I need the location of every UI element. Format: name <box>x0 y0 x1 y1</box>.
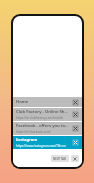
button[interactable]: Instagram <box>13 136 82 149</box>
button[interactable]: Home <box>13 97 82 107</box>
button[interactable]: Close tab <box>72 99 79 106</box>
button[interactable]: Close all tabs <box>71 155 79 162</box>
staticText: NEW TAB <box>53 157 67 161</box>
button[interactable]: Close tab <box>72 111 79 118</box>
staticText: Instagram <box>16 137 38 143</box>
button[interactable]: NEW TAB <box>51 155 69 162</box>
button[interactable]: Club Factory - Online Shopping India <box>13 108 82 121</box>
staticText: https://m.clubfactory.com/mobile <box>16 116 64 120</box>
button[interactable]: Close tab <box>72 139 79 146</box>
staticText: Facebook - offers you to enjoy and all <box>16 123 69 129</box>
button[interactable]: Facebook - offers you to enjoy and all <box>13 122 82 135</box>
staticText: https://m.facebook.com/ <box>16 130 51 134</box>
staticText: Club Factory - Online Shopping India <box>16 109 69 115</box>
button[interactable]: Close tab <box>72 125 79 132</box>
staticText: Home <box>16 99 29 105</box>
staticText: https://www.instagram.com/?hl=en <box>16 144 66 148</box>
